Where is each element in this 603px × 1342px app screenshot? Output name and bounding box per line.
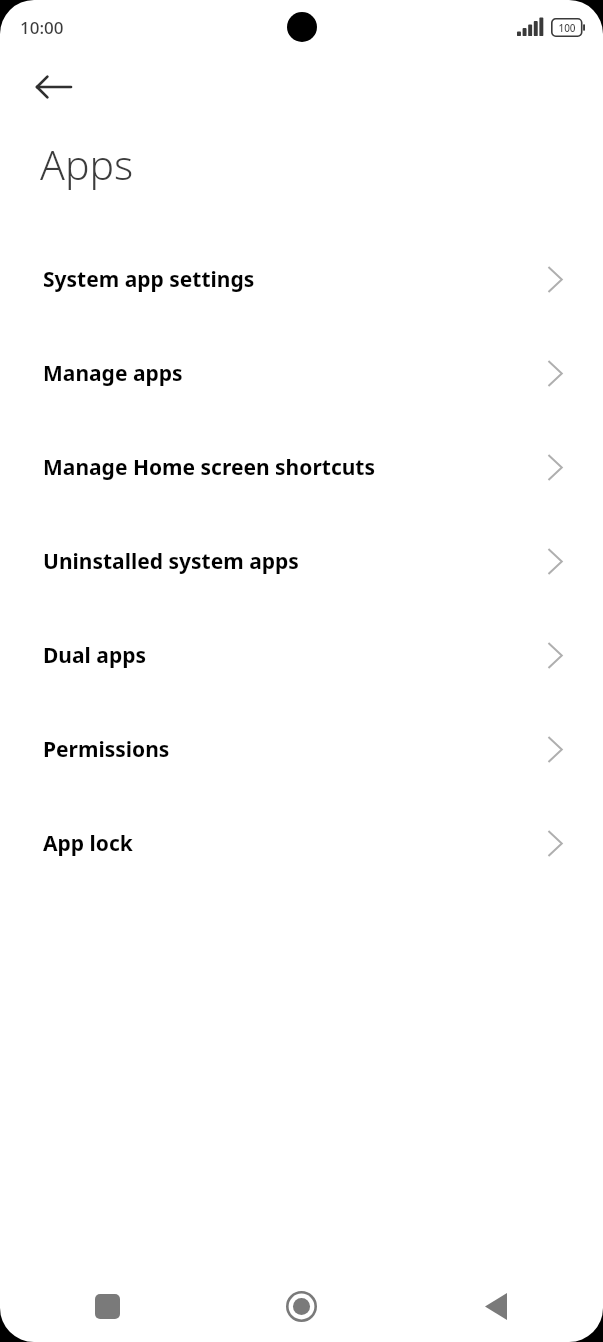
staticText: Permissions <box>43 735 170 764</box>
button[interactable]: System app settings <box>0 232 603 326</box>
staticText: 100 <box>558 21 576 35</box>
staticText: Uninstalled system apps <box>43 547 299 576</box>
staticText: 10:00 <box>20 16 64 39</box>
button[interactable]: Dual apps <box>0 608 603 702</box>
staticText: Dual apps <box>43 641 146 670</box>
button[interactable]: Manage Home screen shortcuts <box>0 420 603 514</box>
button[interactable]: Permissions <box>0 702 603 796</box>
staticText: Manage apps <box>43 359 183 388</box>
staticText: Apps <box>40 136 134 192</box>
staticText: App lock <box>43 829 133 858</box>
button[interactable]: Back <box>28 61 80 113</box>
button[interactable]: App lock <box>0 796 603 890</box>
staticText: System app settings <box>43 265 255 294</box>
button[interactable]: Recent apps <box>0 1270 201 1342</box>
button[interactable]: Home <box>201 1270 402 1342</box>
button[interactable]: Back <box>402 1270 603 1342</box>
button[interactable]: Manage apps <box>0 326 603 420</box>
staticText: Manage Home screen shortcuts <box>43 453 376 482</box>
button[interactable]: Uninstalled system apps <box>0 514 603 608</box>
